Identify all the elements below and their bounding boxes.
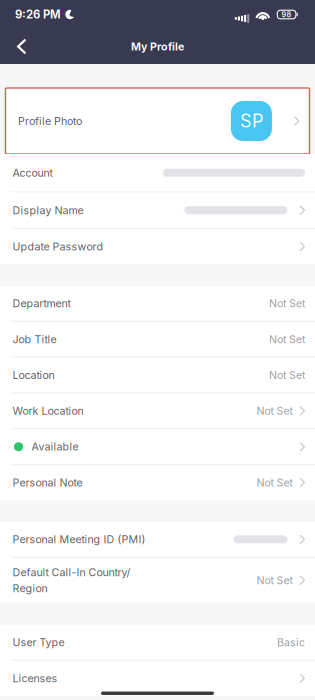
staticText: Department	[12, 297, 70, 310]
staticText: Available	[31, 440, 78, 453]
button[interactable]: Display Name	[0, 192, 315, 228]
button[interactable]: Job Title	[0, 322, 315, 357]
button[interactable]: User Type	[0, 625, 315, 660]
staticText: Personal Note	[12, 476, 82, 489]
button[interactable]: Personal Note	[0, 465, 315, 500]
button[interactable]: Back	[0, 29, 40, 63]
button[interactable]: Department	[0, 286, 315, 321]
staticText: Account	[12, 166, 52, 179]
button[interactable]: Profile Photo	[0, 88, 315, 154]
button[interactable]: Work Location	[0, 393, 315, 428]
staticText: Not Set	[269, 297, 305, 310]
staticText: Update Password	[12, 240, 103, 253]
staticText: Not Set	[256, 476, 292, 489]
button[interactable]: Licenses	[0, 661, 315, 696]
button[interactable]: Location	[0, 358, 315, 392]
staticText: 98	[282, 10, 292, 19]
staticText: Job Title	[12, 333, 56, 346]
staticText: Not Set	[269, 333, 305, 346]
staticText: Default Call-In Country/	[12, 566, 130, 579]
button[interactable]: Account	[0, 154, 315, 191]
button[interactable]: Personal Meeting ID (PMI)	[0, 522, 315, 557]
staticText: Profile Photo	[18, 114, 82, 127]
staticText: Basic	[277, 636, 305, 649]
button[interactable]: Available	[0, 429, 315, 464]
staticText: User Type	[12, 636, 64, 649]
staticText: Location	[12, 369, 54, 381]
staticText: Personal Meeting ID (PMI)	[12, 533, 145, 546]
button[interactable]: Default Call-In Country/	[0, 558, 315, 603]
staticText: Licenses	[12, 672, 57, 685]
staticText: 9:26 PM	[15, 8, 61, 21]
button[interactable]: Update Password	[0, 229, 315, 264]
staticText: Not Set	[269, 369, 305, 381]
staticText: My Profile	[131, 40, 184, 53]
staticText: Not Set	[256, 574, 292, 587]
staticText: Display Name	[12, 204, 83, 217]
staticText: Region	[12, 582, 47, 595]
staticText: Not Set	[256, 404, 292, 417]
staticText: SP	[240, 110, 263, 132]
staticText: Work Location	[12, 404, 83, 417]
